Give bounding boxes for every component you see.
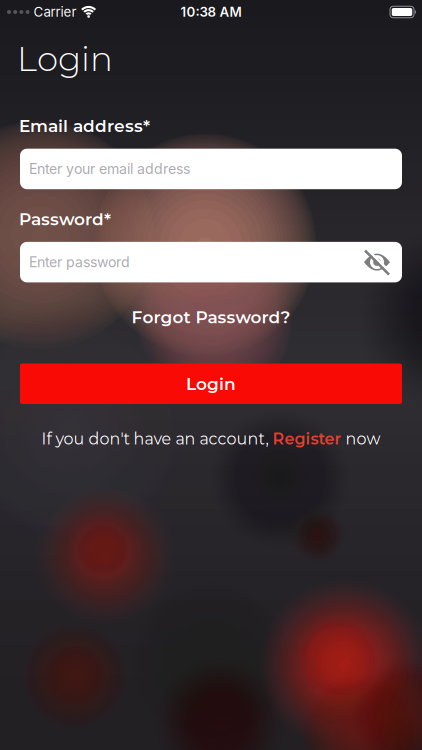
staticText: now [341,429,380,448]
staticText: Password* [19,209,111,229]
staticText: If you don't have an account, [41,429,272,448]
staticText: Forgot Password? [131,307,290,327]
staticText: Email address* [19,115,150,136]
staticText: Enter password [29,254,130,271]
staticText: Register [272,429,341,448]
staticText: Login [186,373,236,394]
staticText: Carrier [34,4,77,20]
button[interactable]: Login [20,363,402,404]
button[interactable]: Show password [364,252,402,272]
button[interactable]: Forgot Password? [131,307,290,327]
staticText: 10:38 AM [180,4,241,20]
staticText: Enter your email address [29,160,190,177]
staticText: Login [17,38,113,79]
button[interactable]: Register [272,429,341,448]
